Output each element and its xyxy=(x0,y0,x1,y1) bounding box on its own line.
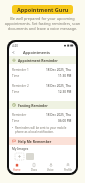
button[interactable]: Profile xyxy=(59,162,76,173)
staticText: Time xyxy=(12,74,20,78)
staticText: • xyxy=(12,126,14,130)
button[interactable]: Appointment Reminder xyxy=(9,56,76,64)
staticText: Appointment Guru xyxy=(17,6,69,13)
staticText: Be well prepared for your upcoming appoi… xyxy=(3,16,82,31)
staticText: Fasting Reminder xyxy=(18,103,48,108)
staticText: Reminder 2 xyxy=(12,84,29,88)
staticText: 11:30 PM xyxy=(58,74,72,78)
staticText: 18 Dec 2025, Thu xyxy=(46,84,72,88)
staticText: Appointment Reminder xyxy=(18,58,58,63)
staticText: Voice xyxy=(47,168,54,172)
button[interactable]: Fasting Reminder xyxy=(9,101,76,109)
button[interactable]: Help Me Remember xyxy=(9,137,76,145)
staticText: Reminder 1 xyxy=(12,68,29,72)
staticText: My Images xyxy=(12,147,29,151)
staticText: 4:20 xyxy=(12,44,18,48)
button[interactable]: Voice xyxy=(42,162,59,173)
staticText: Reminders will be sent to your mobile ph… xyxy=(15,126,72,134)
staticText: Time xyxy=(12,119,20,123)
staticText: Time xyxy=(12,90,20,94)
button[interactable]: Home xyxy=(9,162,25,173)
staticText: 12:30 PM xyxy=(58,90,72,94)
staticText: 18 Dec 2025, Thu xyxy=(46,113,72,117)
button[interactable]: Appointment Guru xyxy=(12,5,73,14)
staticText: Profile xyxy=(64,168,72,172)
staticText: Home xyxy=(13,168,21,172)
staticText: Docs xyxy=(31,168,37,172)
button[interactable]: Back xyxy=(11,50,16,55)
staticText: 06:00 PM xyxy=(58,119,72,123)
staticText: Appointments xyxy=(23,50,51,55)
staticText: 18 Dec 2025, Thu xyxy=(46,68,72,72)
staticText: Reminder xyxy=(12,113,27,117)
button[interactable]: Add image xyxy=(15,153,24,160)
staticText: Help Me Remember xyxy=(18,139,52,144)
button[interactable]: Docs xyxy=(25,162,42,173)
